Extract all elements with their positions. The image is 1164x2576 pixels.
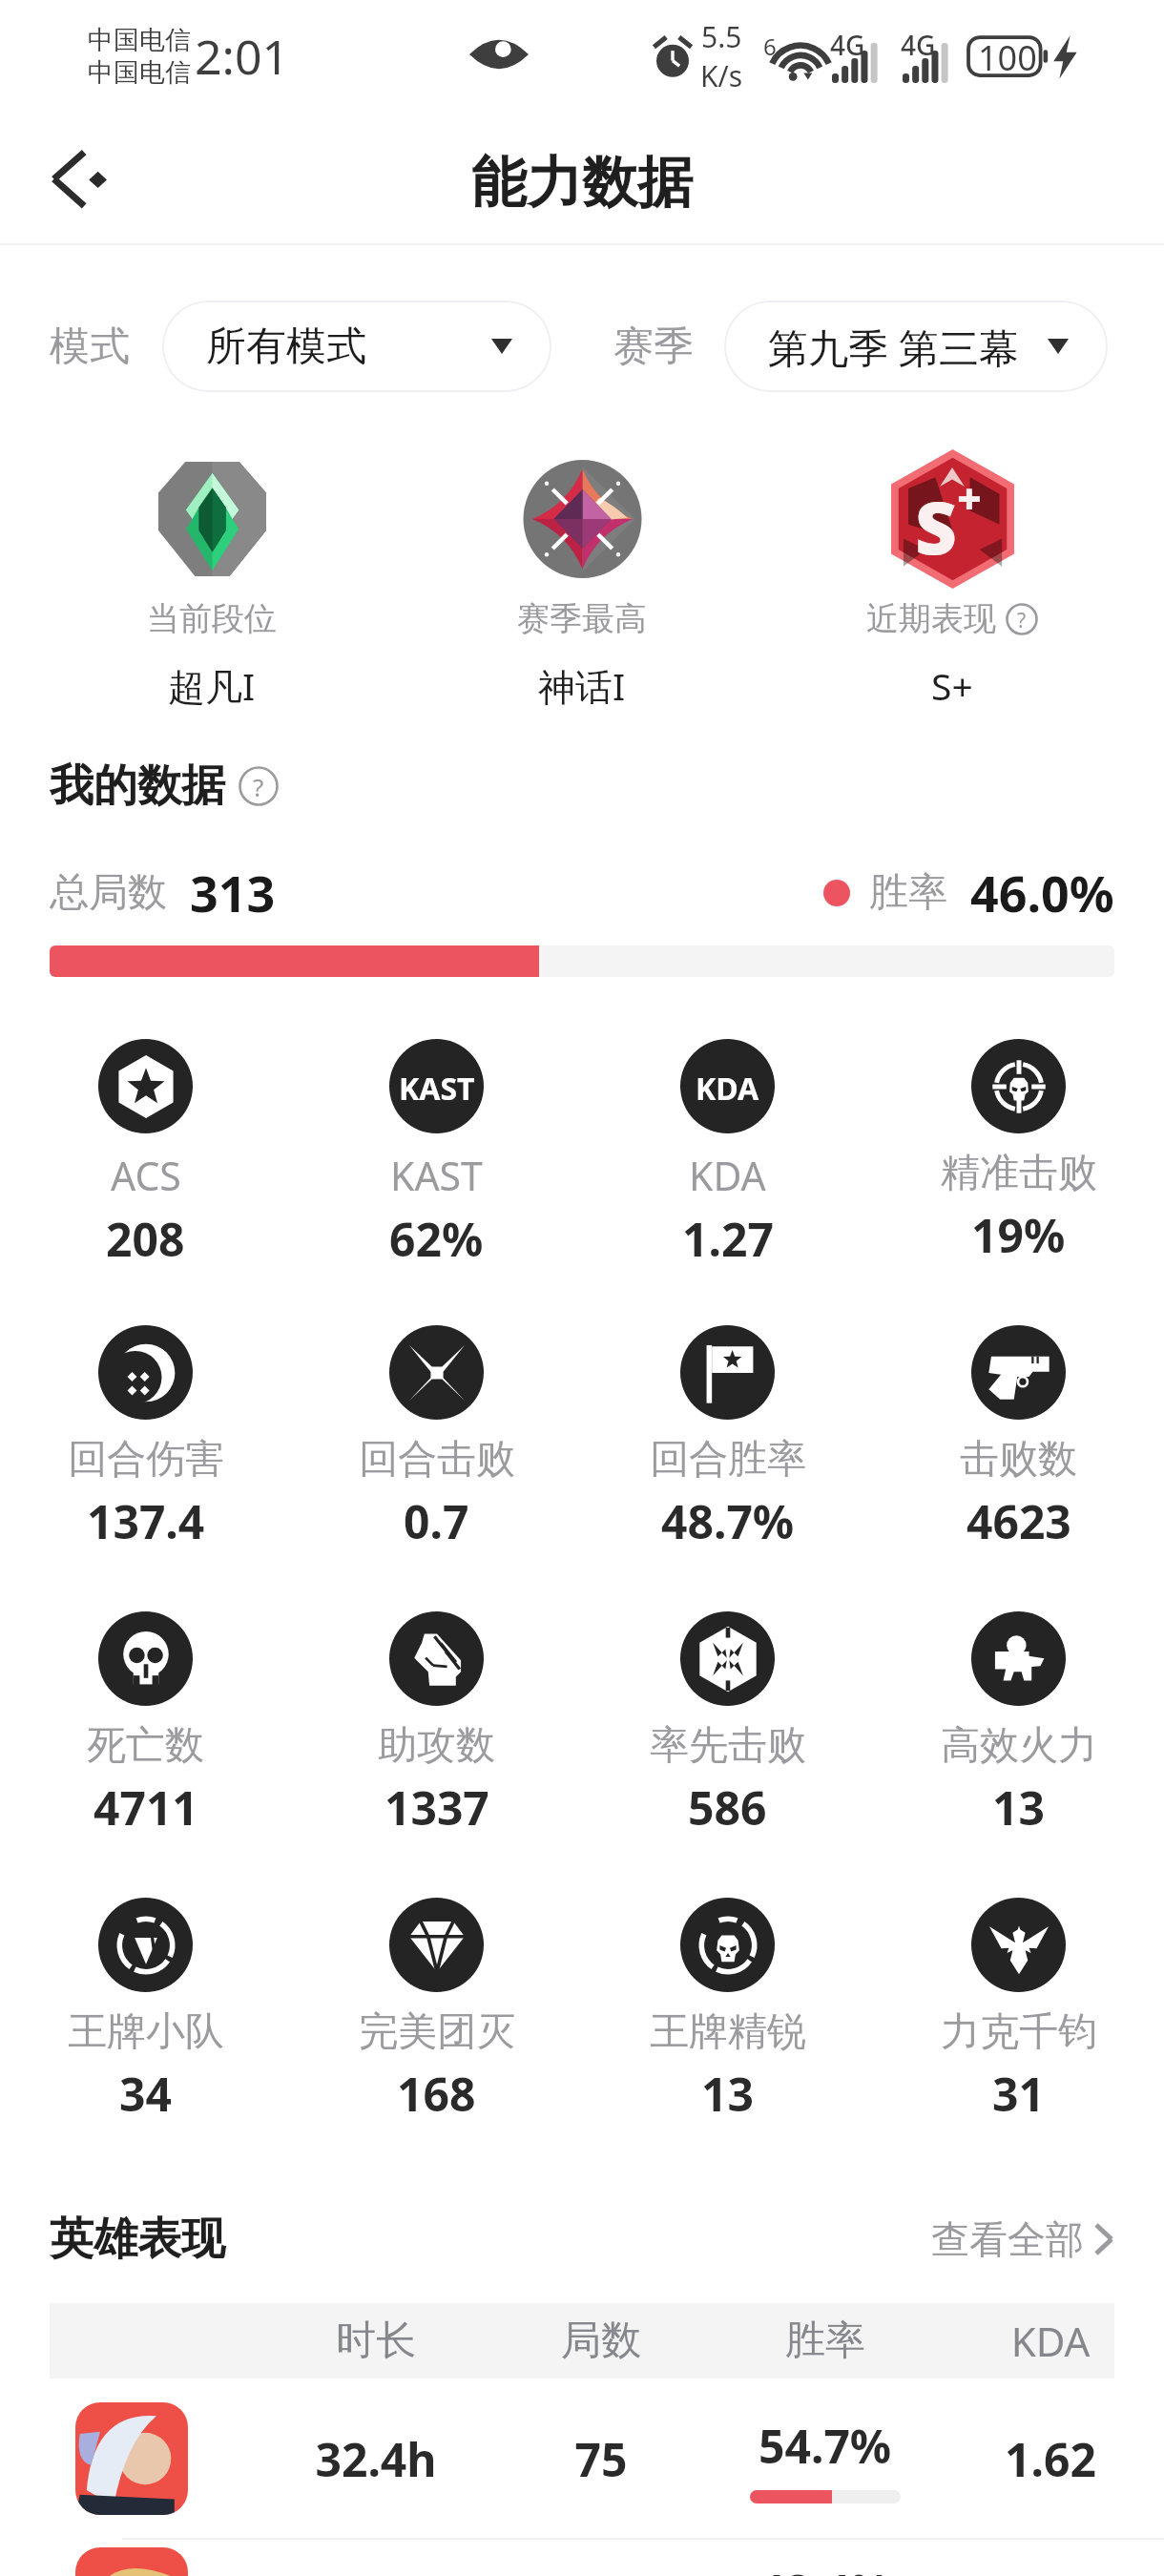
staticText: 4G	[830, 27, 865, 63]
button[interactable]: 力克千钧	[873, 1898, 1164, 2125]
staticText: 王牌小队	[68, 2007, 224, 2057]
button[interactable]: 当前段位	[27, 448, 397, 711]
button[interactable]: 回合伤害	[0, 1325, 291, 1552]
staticText: 4G	[901, 27, 936, 63]
staticText: 48.7%	[661, 1490, 795, 1552]
button[interactable]: 助攻数	[291, 1611, 582, 1839]
staticText: 54.7%	[759, 2415, 892, 2477]
staticText: 62%	[389, 1208, 484, 1270]
staticText: 586	[688, 1776, 767, 1839]
staticText: 1.62	[946, 2428, 1155, 2490]
button[interactable]: Help	[1006, 603, 1038, 635]
button[interactable]: 王牌精锐	[582, 1898, 873, 2125]
staticText: 模式	[50, 322, 130, 372]
staticText: S+	[931, 660, 973, 711]
button[interactable]: 所有模式	[162, 301, 551, 392]
staticText: 当前段位	[147, 598, 277, 639]
staticText: 超凡I	[168, 660, 256, 711]
staticText: 助攻数	[378, 1721, 495, 1771]
staticText: 4623	[967, 1490, 1071, 1552]
staticText: 4711	[94, 1776, 198, 1839]
staticText: 英雄表现	[50, 2212, 225, 2267]
staticText: 1337	[385, 1776, 489, 1839]
staticText: 13	[701, 2063, 754, 2125]
staticText: 近期表现	[866, 598, 996, 639]
staticText: 19%	[971, 1204, 1066, 1266]
staticText: S	[915, 477, 957, 576]
button[interactable]: 回合胜率	[582, 1325, 873, 1552]
staticText: 6	[763, 31, 777, 62]
staticText: 208	[106, 1208, 185, 1270]
button[interactable]: Back	[25, 126, 130, 231]
staticText: 313	[190, 859, 276, 926]
button[interactable]: 查看全部	[931, 2215, 1114, 2263]
staticText: 查看全部	[931, 2215, 1084, 2263]
staticText: KAST	[399, 1068, 475, 1110]
staticText: 回合伤害	[68, 1435, 224, 1485]
staticText: 死亡数	[87, 1721, 204, 1771]
staticText: +	[957, 469, 982, 527]
staticText: KDA	[696, 1068, 759, 1110]
button[interactable]: 王牌小队	[0, 1898, 291, 2125]
staticText: 胜率	[720, 2316, 930, 2366]
staticText: 完美团灭	[359, 2007, 515, 2057]
staticText: 13	[992, 1776, 1045, 1839]
staticText: 击败数	[960, 1435, 1077, 1485]
button[interactable]: 高效火力	[873, 1611, 1164, 1839]
staticText: 第九季 第三幕	[768, 320, 1019, 374]
staticText: KDA	[689, 1149, 766, 1202]
staticText: 中国电信	[88, 56, 191, 89]
button[interactable]: 回合击败	[291, 1325, 582, 1552]
button[interactable]: 赛季最高	[397, 448, 767, 711]
button[interactable]: 击败数	[873, 1325, 1164, 1552]
staticText: 75	[496, 2428, 706, 2490]
button[interactable]: KAST	[291, 1039, 582, 1270]
button[interactable]: 死亡数	[0, 1611, 291, 1839]
button[interactable]: 精准击败	[873, 1039, 1164, 1266]
button[interactable]: Help	[239, 766, 279, 806]
staticText: 48.4%	[759, 2560, 892, 2576]
staticText: 力克千钧	[941, 2007, 1097, 2057]
staticText: ?	[1017, 606, 1027, 634]
staticText: KDA	[946, 2314, 1155, 2368]
staticText: 神话I	[538, 660, 626, 711]
staticText: 137.4	[87, 1490, 205, 1552]
button[interactable]: ACS	[0, 1039, 291, 1270]
button[interactable]: KDA	[582, 1039, 873, 1270]
staticText: K/s	[700, 56, 743, 95]
staticText: ACS	[111, 1149, 181, 1202]
button[interactable]: 32.4h	[0, 2402, 1164, 2515]
button[interactable]: 第九季 第三幕	[724, 301, 1108, 392]
staticText: 1.27	[682, 1208, 774, 1270]
staticText: 回合击败	[359, 1435, 515, 1485]
staticText: 所有模式	[206, 322, 366, 372]
button[interactable]: S	[767, 448, 1137, 711]
staticText: 2:01	[195, 24, 290, 89]
staticText: 局数	[496, 2316, 706, 2366]
staticText: 王牌精锐	[650, 2007, 806, 2057]
staticText: 胜率	[869, 868, 947, 918]
staticText: 能力数据	[471, 148, 693, 218]
staticText: ?	[253, 770, 264, 803]
staticText: 31	[992, 2063, 1045, 2125]
staticText: 34	[119, 2063, 172, 2125]
staticText: 精准击败	[941, 1149, 1097, 1198]
staticText: 回合胜率	[650, 1435, 806, 1485]
button[interactable]: 完美团灭	[291, 1898, 582, 2125]
staticText: 时长	[271, 2316, 481, 2366]
button[interactable]: 率先击败	[582, 1611, 873, 1839]
staticText: 率先击败	[650, 1721, 806, 1771]
staticText: KAST	[390, 1149, 483, 1202]
staticText: 32.4h	[271, 2428, 481, 2490]
staticText: 我的数据	[50, 758, 225, 814]
staticText: 46.0%	[970, 859, 1114, 926]
staticText: 中国电信	[88, 24, 191, 56]
staticText: 赛季	[613, 322, 694, 372]
staticText: 0.7	[404, 1490, 469, 1552]
button[interactable]: 28.1h	[0, 2547, 1164, 2576]
staticText: 5.5	[701, 17, 742, 56]
staticText: 赛季最高	[517, 598, 647, 639]
staticText: 高效火力	[941, 1721, 1097, 1771]
